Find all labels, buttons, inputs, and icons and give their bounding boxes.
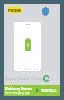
button[interactable]: Battery Saver [4, 85, 60, 96]
staticText: INSTALL [41, 88, 58, 93]
button[interactable]: PRIME [8, 7, 22, 13]
staticText: Battery Saver [5, 86, 33, 91]
staticText: Smart Phone Charging [5, 76, 50, 81]
staticText: PRIME [8, 8, 22, 13]
staticText: Fast charging app [5, 91, 31, 95]
button[interactable]: Boost [43, 75, 50, 82]
button[interactable]: Protection [42, 7, 49, 16]
